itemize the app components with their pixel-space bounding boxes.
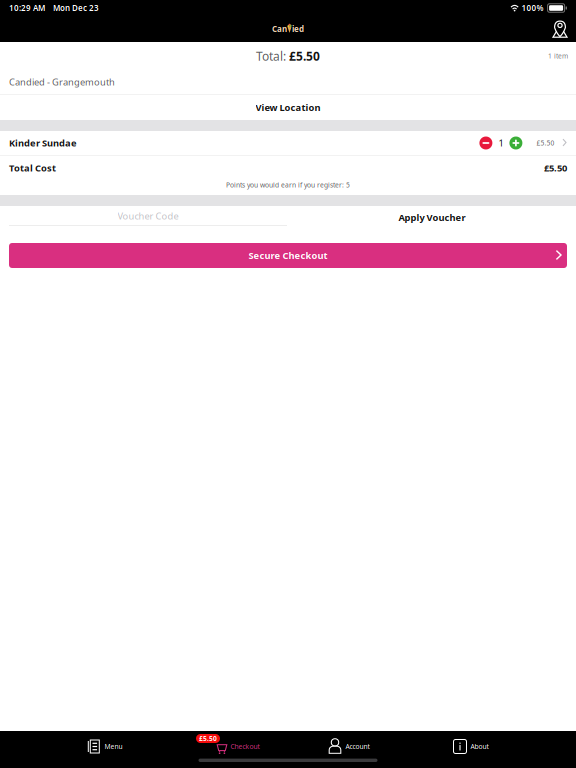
button[interactable]: Checkout: [166, 731, 288, 762]
button[interactable]: About: [410, 731, 532, 762]
staticText: Secure Checkout: [248, 249, 327, 262]
button[interactable]: Voucher Code: [9, 206, 287, 243]
button[interactable]: Menu: [44, 731, 166, 762]
staticText: Kinder Sundae: [9, 137, 77, 149]
staticText: Checkout: [230, 742, 259, 751]
staticText: £5.50: [544, 162, 567, 174]
staticText: Mon Dec 23: [53, 3, 99, 13]
staticText: 1: [498, 137, 503, 149]
button[interactable]: Decrease quantity: [479, 136, 492, 149]
staticText: Total:: [256, 48, 289, 64]
staticText: Account: [345, 742, 369, 751]
staticText: Menu: [104, 742, 122, 751]
staticText: 10:29 AM: [9, 3, 45, 13]
staticText: Can: [272, 24, 287, 34]
staticText: Candied - Grangemouth: [9, 76, 115, 88]
staticText: Total Cost: [9, 162, 56, 174]
staticText: £5.50: [289, 48, 320, 64]
staticText: View Location: [255, 101, 320, 114]
staticText: About: [470, 742, 488, 751]
staticText: £5.50: [199, 734, 217, 743]
staticText: Voucher Code: [117, 210, 178, 222]
staticText: Points you would earn if you register: 5: [226, 181, 350, 189]
button[interactable]: Secure Checkout: [9, 243, 567, 268]
staticText: £5.50: [536, 139, 554, 147]
staticText: Apply Voucher: [398, 211, 465, 224]
button[interactable]: View Location: [0, 95, 576, 120]
button[interactable]: Store location: [544, 20, 576, 38]
button[interactable]: Account: [288, 731, 410, 762]
button[interactable]: Increase quantity: [509, 136, 522, 149]
button[interactable]: Apply Voucher: [374, 206, 490, 228]
staticText: 1 item: [548, 52, 568, 60]
staticText: 100%: [522, 3, 544, 13]
staticText: ied: [292, 24, 304, 34]
